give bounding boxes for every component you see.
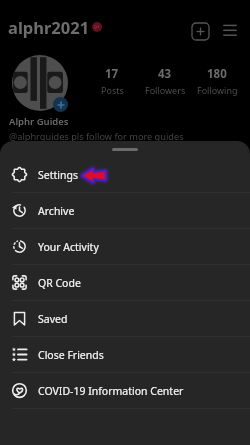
- button[interactable]: 43: [135, 66, 195, 96]
- staticText: Followers: [145, 84, 186, 96]
- button[interactable]: Settings: [0, 157, 250, 192]
- staticText: 9+: [94, 24, 100, 31]
- staticText: Close Friends: [38, 348, 104, 362]
- button[interactable]: Menu: [223, 24, 237, 38]
- button[interactable]: Saved: [0, 301, 250, 336]
- button[interactable]: Add story: [53, 97, 68, 112]
- button[interactable]: COVID-19 Information Center: [0, 373, 250, 408]
- button[interactable]: Close Friends: [0, 337, 250, 372]
- staticText: Settings: [38, 168, 78, 182]
- staticText: 43: [158, 66, 172, 82]
- staticText: alphr2021: [8, 16, 90, 38]
- staticText: @alphrguides pls follow for more guides: [9, 130, 184, 143]
- staticText: COVID-19 Information Center: [38, 384, 184, 398]
- staticText: Archive: [38, 204, 75, 218]
- button[interactable]: 180: [187, 66, 247, 96]
- button[interactable]: New post: [192, 23, 209, 40]
- staticText: 17: [105, 66, 119, 82]
- staticText: Saved: [38, 312, 68, 326]
- button[interactable]: 17: [82, 66, 142, 96]
- staticText: 180: [207, 66, 227, 82]
- staticText: Following: [197, 84, 238, 96]
- staticText: Your Activity: [38, 240, 99, 254]
- button[interactable]: QR Code: [0, 265, 250, 300]
- button[interactable]: Your Activity: [0, 229, 250, 264]
- button[interactable]: Archive: [0, 193, 250, 228]
- staticText: QR Code: [38, 276, 81, 290]
- staticText: Posts: [101, 84, 124, 96]
- staticText: Alphr Guides: [9, 115, 69, 128]
